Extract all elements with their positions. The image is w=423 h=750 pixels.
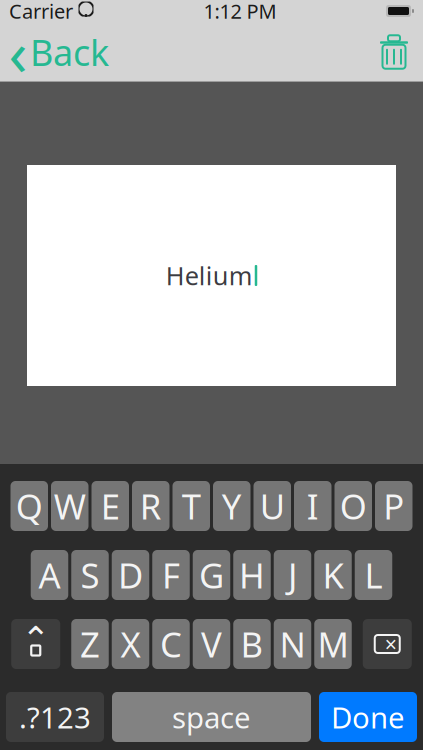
button[interactable]: C (152, 619, 190, 669)
button[interactable]: V (193, 619, 230, 669)
staticText: Carrier (9, 0, 73, 24)
button[interactable]: J (274, 550, 311, 600)
staticText: E (101, 483, 120, 529)
button[interactable]: M (314, 619, 352, 669)
button[interactable]: space (112, 692, 311, 742)
button[interactable]: K (314, 550, 352, 600)
button[interactable]: P (375, 481, 412, 531)
button[interactable]: .?123 (6, 692, 104, 742)
button[interactable]: R (132, 481, 169, 531)
button[interactable]: Shift (11, 619, 60, 669)
staticText: V (201, 621, 222, 667)
staticText: Q (16, 483, 43, 529)
button[interactable]: U (253, 481, 291, 531)
button[interactable]: W (51, 481, 88, 531)
staticText: M (317, 621, 348, 667)
button[interactable]: H (233, 550, 271, 600)
button[interactable]: G (193, 550, 230, 600)
staticText: I (307, 483, 319, 529)
button[interactable]: Delete (363, 619, 412, 669)
staticText: 1:12 PM (203, 0, 276, 24)
button[interactable]: Q (10, 481, 48, 531)
staticText: P (383, 483, 404, 529)
button[interactable]: A (31, 550, 68, 600)
staticText: C (160, 621, 182, 667)
staticText: ‹ (8, 11, 27, 93)
staticText: R (140, 483, 162, 529)
staticText: Z (80, 621, 100, 667)
button[interactable]: B (233, 619, 271, 669)
button[interactable]: L (355, 550, 392, 600)
button[interactable]: E (91, 481, 129, 531)
staticText: O (340, 483, 367, 529)
staticText: H (239, 552, 265, 598)
staticText: Y (222, 483, 242, 529)
staticText: .?123 (19, 697, 91, 736)
button[interactable]: X (112, 619, 149, 669)
staticText: ⌃ (21, 619, 50, 659)
staticText: J (288, 552, 297, 598)
button[interactable]: Done (319, 692, 417, 742)
staticText: T (182, 483, 201, 529)
staticText: L (364, 552, 382, 598)
staticText: G (199, 552, 224, 598)
staticText: W (54, 483, 86, 529)
staticText: × (385, 630, 397, 658)
staticText: F (162, 552, 180, 598)
button[interactable]: O (334, 481, 372, 531)
staticText: Back (30, 28, 109, 76)
staticText: B (240, 621, 263, 667)
button[interactable]: D (112, 550, 149, 600)
button[interactable]: Y (213, 481, 250, 531)
staticText: U (260, 483, 285, 529)
button[interactable]: Delete (367, 28, 423, 75)
staticText: Helium (166, 259, 253, 292)
button[interactable]: ‹ (0, 22, 119, 82)
staticText: S (80, 552, 99, 598)
staticText: K (322, 552, 343, 598)
staticText: space (172, 697, 251, 736)
button[interactable]: N (274, 619, 311, 669)
button[interactable]: I (294, 481, 331, 531)
button[interactable]: T (172, 481, 210, 531)
staticText: N (279, 621, 305, 667)
staticText: Done (331, 697, 405, 736)
button[interactable]: Z (71, 619, 109, 669)
staticText: A (38, 552, 60, 598)
staticText: X (120, 621, 140, 667)
button[interactable]: F (152, 550, 190, 600)
button[interactable]: S (71, 550, 109, 600)
staticText: D (118, 552, 143, 598)
